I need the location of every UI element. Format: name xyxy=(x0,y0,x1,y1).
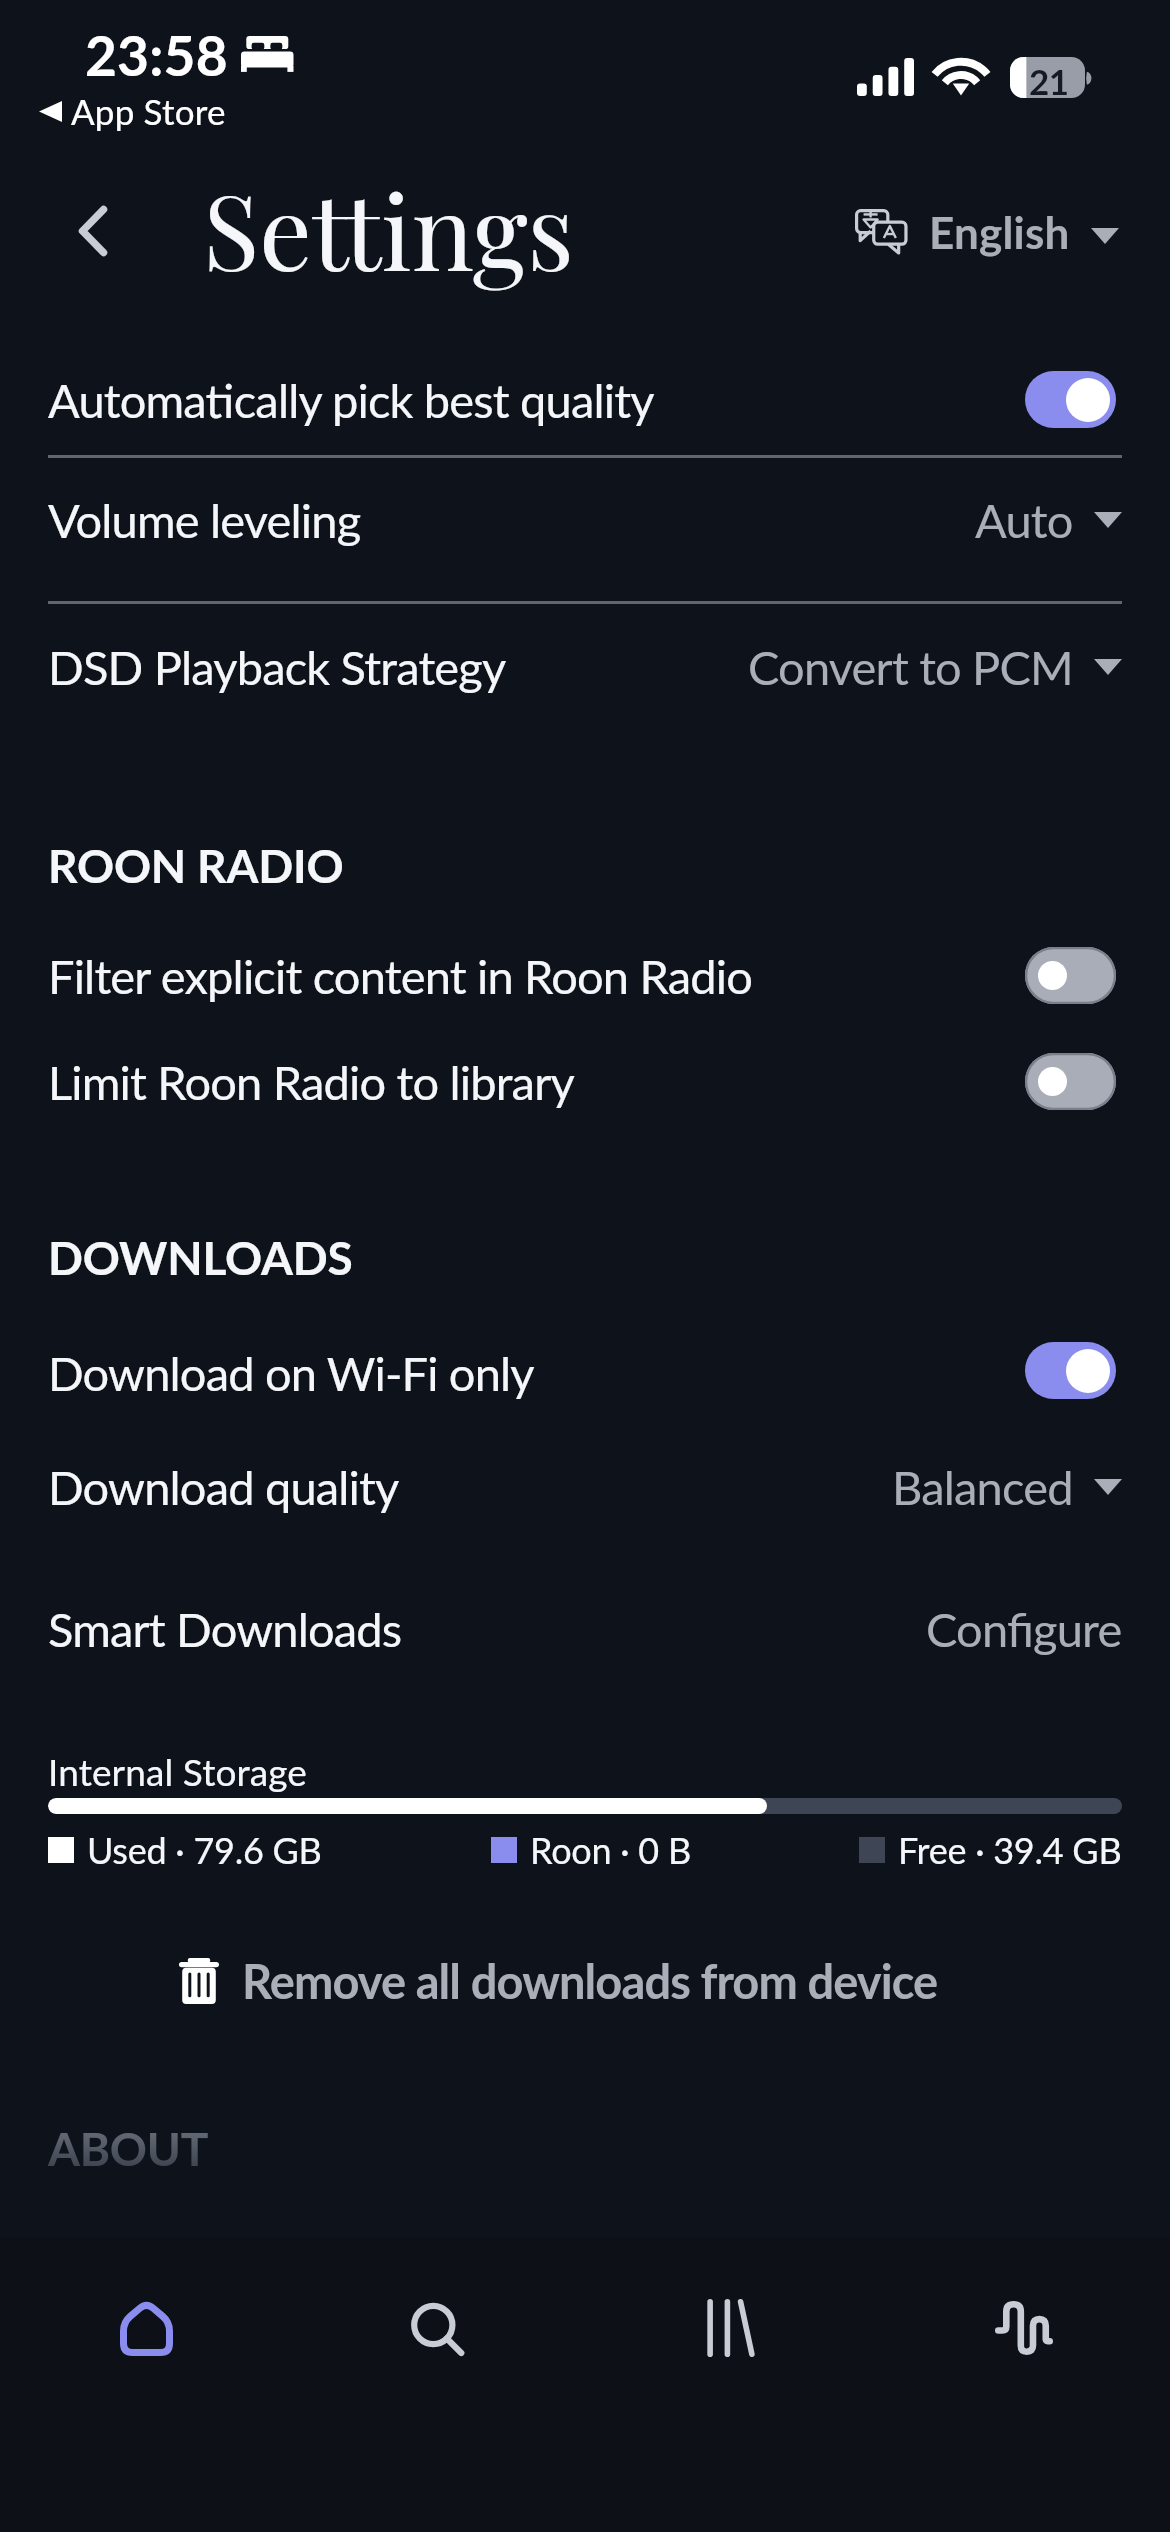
button[interactable]: Limit Roon Radio to library xyxy=(48,1047,908,1117)
button[interactable]: Remove all downloads from device xyxy=(179,1953,938,2009)
staticText: Roon · 0 B xyxy=(530,1828,691,1871)
staticText: Filter explicit content in Roon Radio xyxy=(48,948,753,1004)
button[interactable]: On xyxy=(1023,370,1117,428)
staticText: Download quality xyxy=(48,1459,399,1515)
staticText: Used · 79.6 GB xyxy=(87,1828,322,1871)
button[interactable]: Auto xyxy=(500,485,1122,555)
staticText: Automatically pick best quality xyxy=(48,372,654,428)
staticText: Limit Roon Radio to library xyxy=(48,1054,574,1110)
button[interactable]: Configure xyxy=(600,1594,1122,1664)
button[interactable]: Balanced xyxy=(500,1452,1122,1522)
staticText: 23:58 xyxy=(85,22,228,88)
button[interactable]: English xyxy=(840,196,1130,264)
staticText: DSD Playback Strategy xyxy=(48,639,506,695)
button[interactable]: Convert to PCM xyxy=(500,632,1122,702)
button[interactable]: Library xyxy=(584,2237,877,2418)
button[interactable]: Off xyxy=(1023,946,1117,1004)
staticText: Free · 39.4 GB xyxy=(898,1828,1122,1871)
staticText: Convert to PCM xyxy=(748,639,1073,695)
button[interactable]: Search xyxy=(292,2237,584,2418)
staticText: 21 xyxy=(1029,60,1069,101)
staticText: ABOUT xyxy=(48,2121,209,2176)
button[interactable]: Automatically pick best quality xyxy=(48,365,908,435)
button[interactable]: Volume leveling xyxy=(48,485,908,555)
button[interactable]: Filter explicit content in Roon Radio xyxy=(48,941,908,1011)
staticText: Smart Downloads xyxy=(48,1601,402,1657)
button[interactable]: Off xyxy=(1023,1052,1117,1110)
staticText: Configure xyxy=(926,1601,1122,1657)
staticText: DOWNLOADS xyxy=(48,1230,353,1285)
staticText: Internal Storage xyxy=(48,1749,307,1793)
staticText: Balanced xyxy=(892,1459,1073,1515)
staticText: Download on Wi-Fi only xyxy=(48,1345,534,1401)
staticText: Settings xyxy=(203,158,574,297)
button[interactable]: DSD Playback Strategy xyxy=(48,632,908,702)
staticText: App Store xyxy=(71,90,226,132)
button[interactable]: Smart Downloads xyxy=(48,1594,908,1664)
button[interactable]: Download on Wi-Fi only xyxy=(48,1338,908,1408)
button[interactable]: On xyxy=(1023,1341,1117,1399)
staticText: English xyxy=(929,206,1070,259)
button[interactable]: Back xyxy=(62,198,124,264)
button[interactable]: Home xyxy=(0,2237,292,2418)
button[interactable]: Live Radio xyxy=(877,2237,1170,2418)
button[interactable]: Download quality xyxy=(48,1452,908,1522)
staticText: Remove all downloads from device xyxy=(242,1953,938,2009)
staticText: ROON RADIO xyxy=(48,838,344,893)
staticText: Volume leveling xyxy=(48,492,361,548)
staticText: Auto xyxy=(975,492,1073,548)
